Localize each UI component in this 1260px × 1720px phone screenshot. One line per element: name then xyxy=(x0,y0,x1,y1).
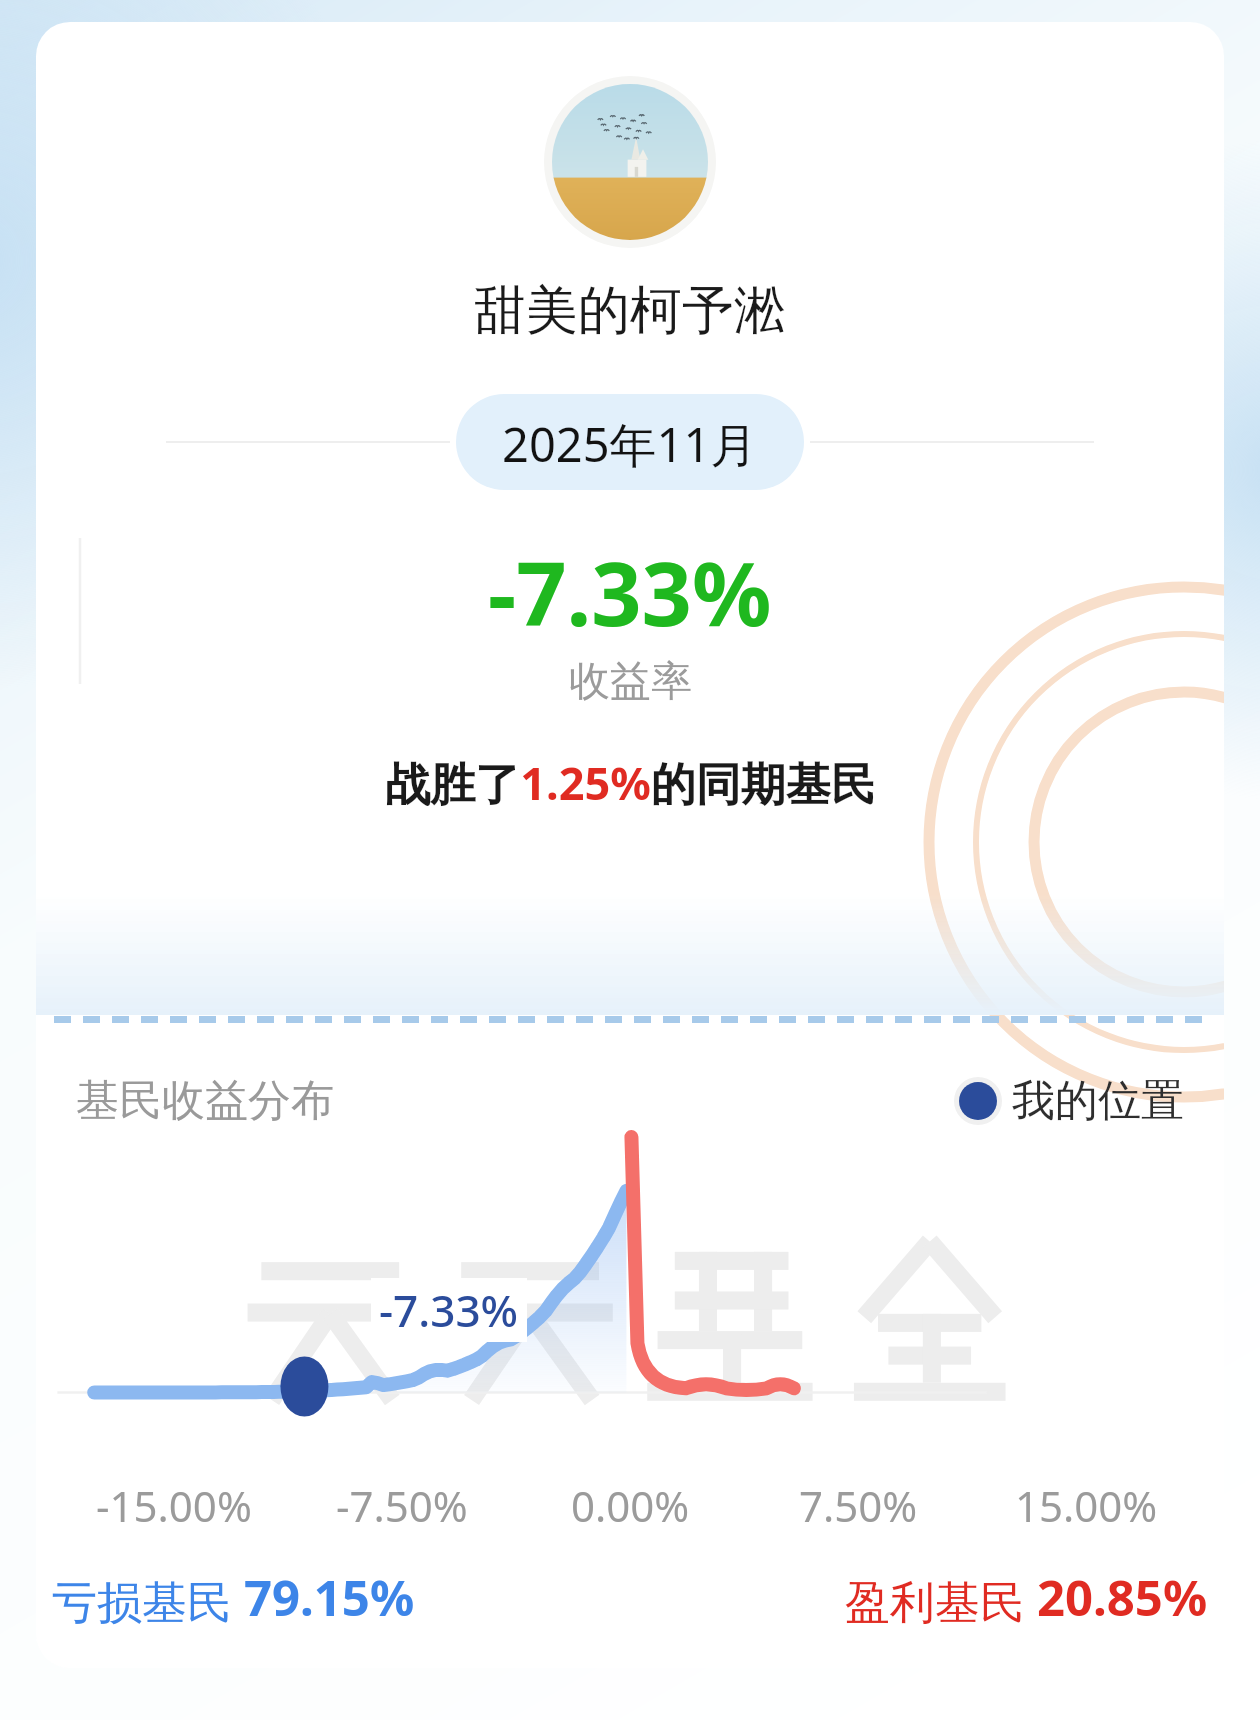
staticText: 0.00% xyxy=(571,1477,690,1534)
staticText: 基民收益分布 xyxy=(76,1074,334,1128)
staticText: -7.33% xyxy=(488,532,772,652)
staticText: -7.33% xyxy=(379,1280,519,1340)
button[interactable]: 盈利基民 xyxy=(845,1564,1208,1631)
button[interactable]: 用户头像 xyxy=(544,76,716,248)
staticText: 79.15% xyxy=(244,1564,415,1631)
staticText: 甜美的柯予淞 xyxy=(474,278,786,344)
staticText: -15.00% xyxy=(96,1477,252,1534)
button[interactable]: 2025年11月 xyxy=(456,394,804,490)
button[interactable]: 我的位置 xyxy=(954,1074,1184,1128)
staticText: -7.50% xyxy=(336,1477,468,1534)
staticText: 亏损基民 xyxy=(52,1570,244,1631)
staticText: 我的位置 xyxy=(1012,1074,1184,1128)
staticText: 2025年11月 xyxy=(502,412,758,472)
staticText: 收益率 xyxy=(569,656,692,708)
staticText: 盈利基民 xyxy=(845,1570,1037,1631)
staticText: 15.00% xyxy=(1015,1477,1158,1534)
staticText: 7.50% xyxy=(799,1477,918,1534)
staticText: 20.85% xyxy=(1037,1564,1208,1631)
staticText: 战胜了1.25%的同期基民 xyxy=(385,752,876,813)
button[interactable]: 亏损基民 xyxy=(52,1564,415,1631)
